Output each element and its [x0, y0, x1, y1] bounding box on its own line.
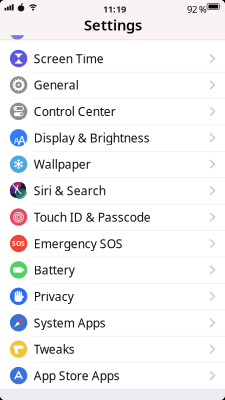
staticText: General	[34, 77, 79, 93]
staticText: Siri & Search	[34, 183, 106, 199]
button[interactable]: Screen Time	[0, 45, 225, 72]
button[interactable]: Control Center	[0, 98, 225, 125]
button[interactable]: App Store Apps	[0, 362, 225, 389]
button[interactable]: Battery	[0, 257, 225, 283]
button[interactable]: Tweaks	[0, 336, 225, 362]
staticText: Control Center	[34, 103, 116, 119]
staticText: System Apps	[34, 315, 106, 331]
staticText: Settings	[84, 15, 142, 34]
staticText: A	[14, 135, 19, 146]
button[interactable]: A	[0, 125, 225, 151]
staticText: Privacy	[34, 288, 74, 304]
staticText: A	[18, 132, 26, 148]
button[interactable]: SOS	[0, 230, 225, 257]
button[interactable]: Touch ID & Passcode	[0, 204, 225, 230]
staticText: App Store Apps	[34, 368, 120, 383]
button[interactable]: System Apps	[0, 309, 225, 336]
staticText: Emergency SOS	[34, 235, 123, 251]
staticText: Tweaks	[34, 341, 75, 357]
staticText: Battery	[34, 262, 75, 278]
button[interactable]: Siri & Search	[0, 177, 225, 204]
staticText: Wallpaper	[34, 156, 91, 172]
staticText: Screen Time	[34, 51, 104, 66]
staticText: Touch ID & Passcode	[34, 209, 151, 225]
staticText: Display & Brightness	[34, 130, 150, 146]
staticText: 11:19	[103, 3, 126, 15]
button[interactable]: Wallpaper	[0, 151, 225, 177]
staticText: 92 %	[187, 3, 207, 15]
button[interactable]: General	[0, 72, 225, 98]
button[interactable]: Privacy	[0, 283, 225, 309]
staticText: SOS	[12, 239, 25, 248]
